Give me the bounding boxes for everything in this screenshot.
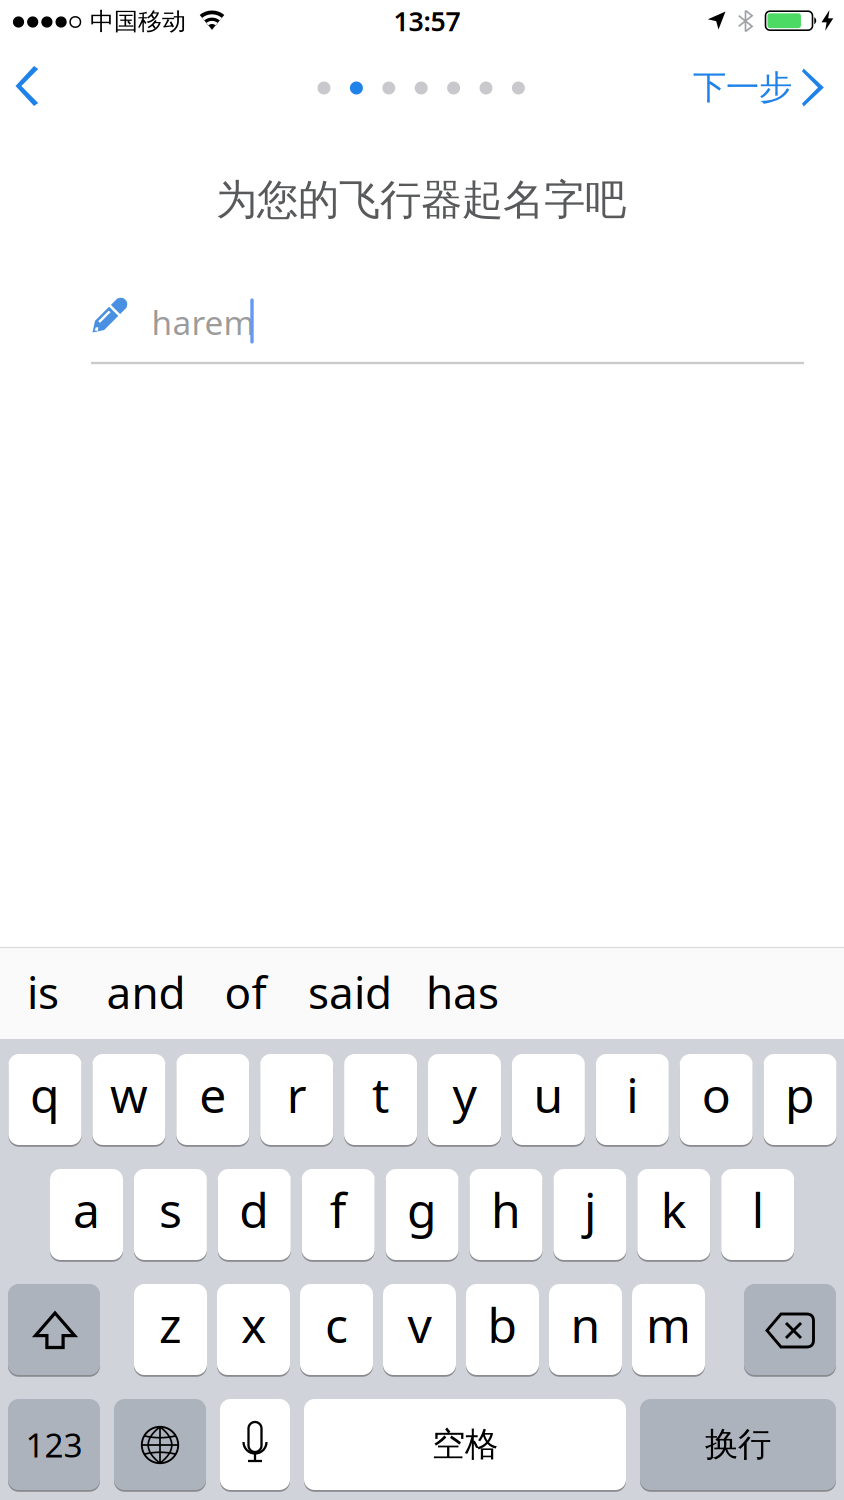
button[interactable]: p bbox=[764, 1053, 837, 1146]
staticText: n bbox=[570, 1293, 600, 1356]
button[interactable]: c bbox=[300, 1283, 373, 1376]
button[interactable]: d bbox=[218, 1168, 291, 1261]
button[interactable]: t bbox=[344, 1053, 417, 1146]
button[interactable]: and bbox=[106, 948, 185, 1036]
button[interactable]: v bbox=[383, 1283, 456, 1376]
button[interactable]: 换行 bbox=[640, 1398, 836, 1491]
button[interactable]: l bbox=[721, 1168, 794, 1261]
button[interactable] bbox=[114, 1398, 206, 1491]
staticText: and bbox=[106, 963, 185, 1021]
button[interactable]: of bbox=[224, 948, 266, 1036]
staticText: f bbox=[330, 1178, 347, 1241]
staticText: q bbox=[30, 1063, 60, 1126]
staticText: c bbox=[325, 1293, 348, 1356]
button[interactable]: f bbox=[302, 1168, 375, 1261]
staticText: y bbox=[452, 1063, 476, 1126]
staticText: x bbox=[241, 1293, 266, 1356]
button[interactable]: o bbox=[680, 1053, 753, 1146]
button[interactable]: g bbox=[386, 1168, 459, 1261]
staticText: z bbox=[159, 1293, 182, 1356]
button[interactable] bbox=[13, 64, 43, 110]
button[interactable]: i bbox=[596, 1053, 669, 1146]
staticText: s bbox=[159, 1178, 182, 1241]
staticText: of bbox=[224, 963, 266, 1021]
button[interactable]: 123 bbox=[8, 1398, 100, 1491]
button[interactable]: is bbox=[27, 948, 59, 1036]
staticText: has bbox=[426, 963, 499, 1021]
staticText: h bbox=[491, 1178, 521, 1241]
button[interactable]: y bbox=[428, 1053, 501, 1146]
button[interactable]: 下一步 bbox=[693, 66, 825, 108]
staticText: j bbox=[584, 1178, 596, 1241]
button[interactable]: m bbox=[632, 1283, 705, 1376]
button[interactable] bbox=[220, 1398, 290, 1491]
button[interactable] bbox=[744, 1283, 836, 1376]
staticText: 下一步 bbox=[693, 67, 792, 108]
staticText: 换行 bbox=[705, 1424, 771, 1465]
staticText: i bbox=[626, 1063, 638, 1126]
button[interactable]: u bbox=[512, 1053, 585, 1146]
staticText: r bbox=[287, 1063, 307, 1126]
button[interactable]: w bbox=[92, 1053, 165, 1146]
button[interactable]: n bbox=[549, 1283, 622, 1376]
button[interactable]: said bbox=[308, 948, 392, 1036]
staticText: harem bbox=[151, 300, 254, 344]
staticText: d bbox=[239, 1178, 269, 1241]
button[interactable]: e bbox=[176, 1053, 249, 1146]
staticText: is bbox=[27, 963, 59, 1021]
staticText: 中国移动 bbox=[90, 7, 186, 36]
button[interactable]: has bbox=[426, 948, 499, 1036]
button[interactable]: k bbox=[637, 1168, 710, 1261]
button[interactable]: z bbox=[134, 1283, 207, 1376]
staticText: u bbox=[533, 1063, 563, 1126]
staticText: 13:57 bbox=[393, 3, 460, 39]
button[interactable]: x bbox=[217, 1283, 290, 1376]
staticText: g bbox=[407, 1178, 437, 1241]
staticText: 为您的飞行器起名字吧 bbox=[216, 175, 626, 225]
staticText: l bbox=[752, 1178, 764, 1241]
staticText: b bbox=[487, 1293, 517, 1356]
staticText: k bbox=[661, 1178, 687, 1241]
staticText: w bbox=[110, 1063, 148, 1126]
staticText: t bbox=[372, 1063, 389, 1126]
button[interactable]: b bbox=[466, 1283, 539, 1376]
staticText: a bbox=[73, 1178, 100, 1241]
button[interactable]: q bbox=[8, 1053, 81, 1146]
button[interactable]: j bbox=[553, 1168, 626, 1261]
staticText: v bbox=[407, 1293, 431, 1356]
staticText: 123 bbox=[25, 1422, 82, 1467]
staticText: said bbox=[308, 963, 392, 1021]
staticText: o bbox=[702, 1063, 731, 1126]
button[interactable]: s bbox=[134, 1168, 207, 1261]
staticText: m bbox=[646, 1293, 691, 1356]
staticText: 空格 bbox=[432, 1424, 498, 1465]
button[interactable]: a bbox=[50, 1168, 123, 1261]
staticText: p bbox=[785, 1063, 815, 1126]
button[interactable]: 空格 bbox=[304, 1398, 626, 1491]
button[interactable]: h bbox=[469, 1168, 542, 1261]
button[interactable]: r bbox=[260, 1053, 333, 1146]
staticText: e bbox=[199, 1063, 226, 1126]
button[interactable] bbox=[8, 1283, 100, 1376]
button[interactable] bbox=[91, 291, 805, 363]
